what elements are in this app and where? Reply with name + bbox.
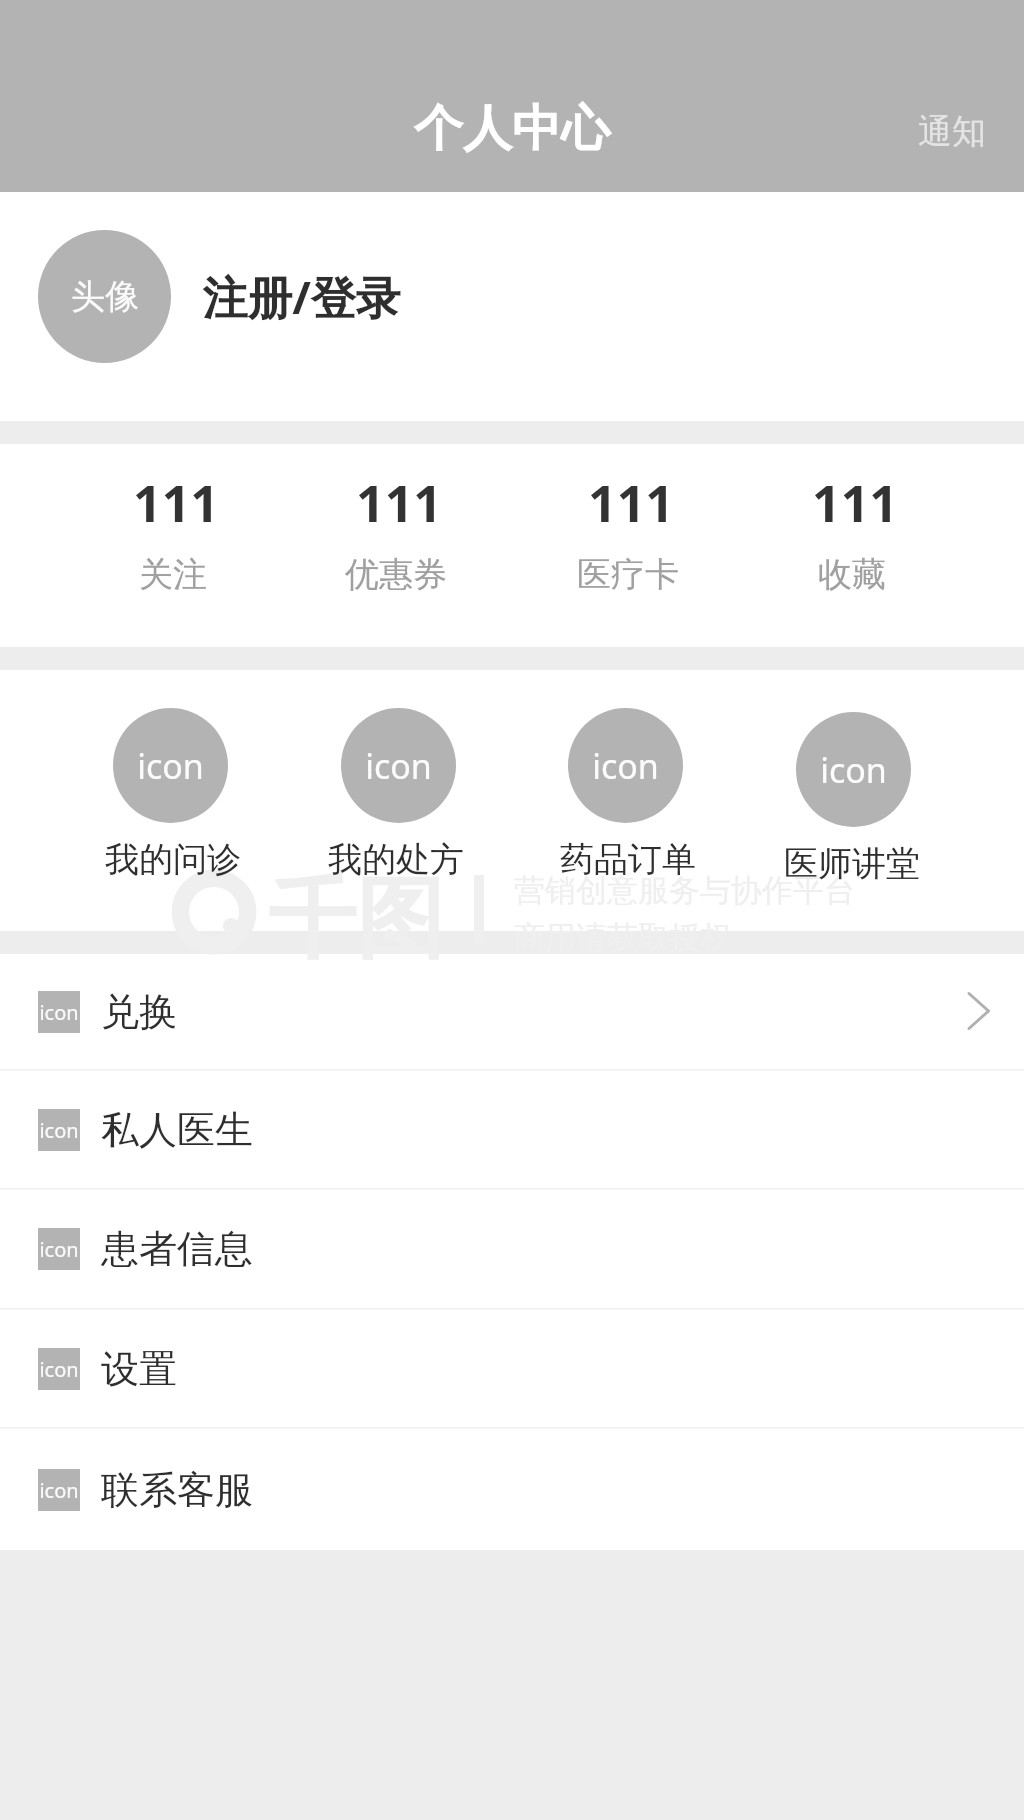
staticText: icon [592, 743, 659, 789]
button[interactable]: icon [0, 954, 1024, 1071]
button[interactable]: icon [515, 670, 741, 931]
staticText: icon [39, 1117, 79, 1144]
button[interactable]: 111 [515, 444, 741, 647]
staticText: icon [39, 1236, 79, 1263]
staticText: 我的问诊 [105, 838, 241, 881]
staticText: icon [39, 1477, 79, 1504]
staticText: 注册/登录 [202, 266, 401, 327]
button[interactable]: icon [0, 1071, 1024, 1190]
button[interactable]: 111 [739, 444, 965, 647]
staticText: 头像 [71, 275, 139, 318]
staticText: 私人医生 [101, 1106, 253, 1154]
button[interactable]: icon [0, 1429, 1024, 1550]
staticText: icon [137, 743, 204, 789]
staticText: 联系客服 [101, 1466, 253, 1514]
staticText: 千图 [268, 864, 444, 975]
staticText: icon [820, 747, 887, 793]
staticText: 111 [812, 469, 898, 537]
staticText: 医师讲堂 [784, 842, 920, 885]
button[interactable]: 111 [283, 444, 509, 647]
staticText: 111 [588, 469, 674, 537]
staticText: 关注 [139, 553, 207, 596]
button[interactable]: icon [283, 670, 509, 931]
staticText: 兑换 [101, 988, 177, 1036]
button[interactable]: 通知 [900, 100, 1004, 163]
staticText: 通知 [918, 110, 986, 153]
staticText: 我的处方 [328, 838, 464, 881]
staticText: icon [365, 743, 432, 789]
other: More [967, 991, 991, 1031]
button[interactable]: 111 [60, 444, 286, 647]
staticText: 收藏 [818, 553, 886, 596]
staticText: 个人中心 [414, 98, 610, 160]
staticText: icon [39, 999, 79, 1026]
button[interactable]: icon [0, 1310, 1024, 1429]
staticText: 优惠券 [345, 553, 447, 596]
staticText: icon [39, 1356, 79, 1383]
button[interactable]: 头像 [0, 192, 1024, 421]
staticText: 设置 [101, 1345, 177, 1393]
staticText: 药品订单 [560, 838, 696, 881]
staticText: 营销创意服务与协作平台 [514, 871, 855, 910]
button[interactable]: icon [0, 1190, 1024, 1310]
staticText: 商用请获取授权 [514, 918, 731, 957]
button[interactable]: icon [739, 670, 965, 931]
staticText: 111 [356, 469, 442, 537]
staticText: 111 [133, 469, 219, 537]
staticText: 患者信息 [101, 1225, 253, 1273]
staticText: 医疗卡 [577, 553, 679, 596]
button[interactable]: icon [60, 670, 286, 931]
